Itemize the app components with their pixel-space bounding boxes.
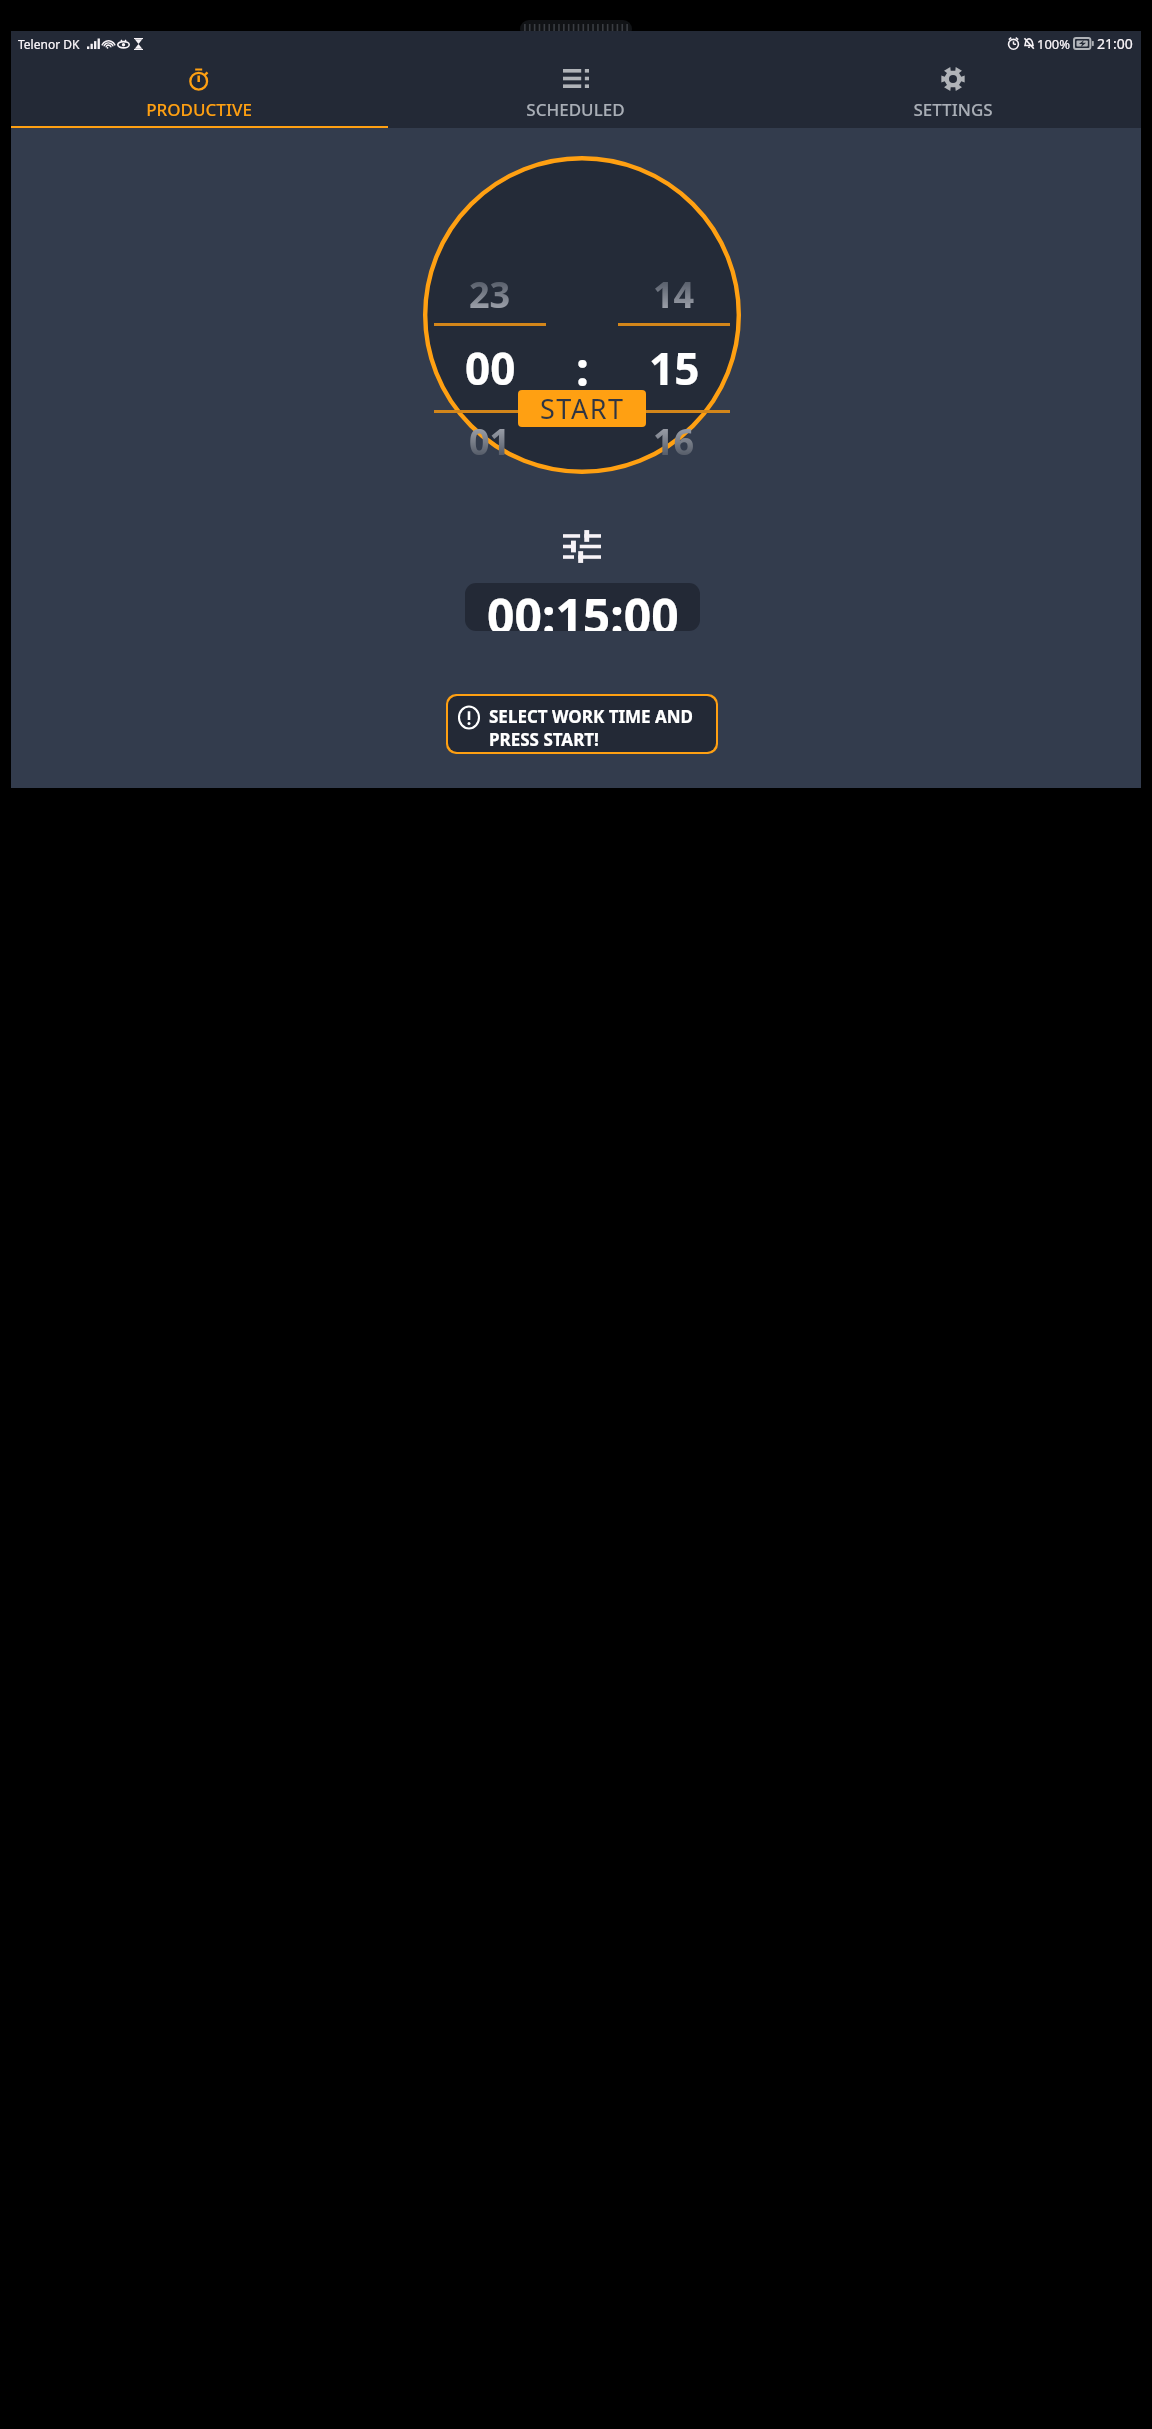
button[interactable]: SETTINGS — [764, 56, 1141, 126]
staticText: 00 — [465, 338, 516, 398]
staticText: SETTINGS — [913, 98, 993, 121]
staticText: PRODUCTIVE — [146, 98, 252, 121]
staticText: 15 — [649, 338, 700, 398]
button[interactable]: 23 — [431, 270, 549, 466]
button[interactable]: PRODUCTIVE — [11, 56, 387, 126]
staticText: SELECT WORK TIME AND PRESS START! — [489, 705, 716, 751]
button[interactable]: SCHEDULED — [387, 56, 764, 126]
staticText: 00:15:00 — [487, 583, 679, 631]
staticText: 14 — [653, 270, 695, 319]
staticText: 21:00 — [1097, 34, 1133, 53]
button[interactable]: START — [518, 390, 646, 427]
button[interactable]: 00:15:00 — [465, 583, 700, 631]
staticText: 23 — [469, 270, 511, 319]
button[interactable]: Timer settings — [558, 522, 606, 570]
staticText: 16 — [653, 417, 695, 466]
staticText: 01 — [469, 417, 511, 466]
staticText: Telenor DK — [18, 36, 80, 52]
staticText: : — [576, 337, 589, 400]
staticText: SCHEDULED — [526, 98, 625, 121]
button[interactable]: 14 — [615, 270, 733, 466]
staticText: 100% — [1037, 35, 1071, 53]
staticText: START — [540, 390, 625, 427]
button[interactable]: SELECT WORK TIME AND PRESS START! — [448, 696, 716, 752]
